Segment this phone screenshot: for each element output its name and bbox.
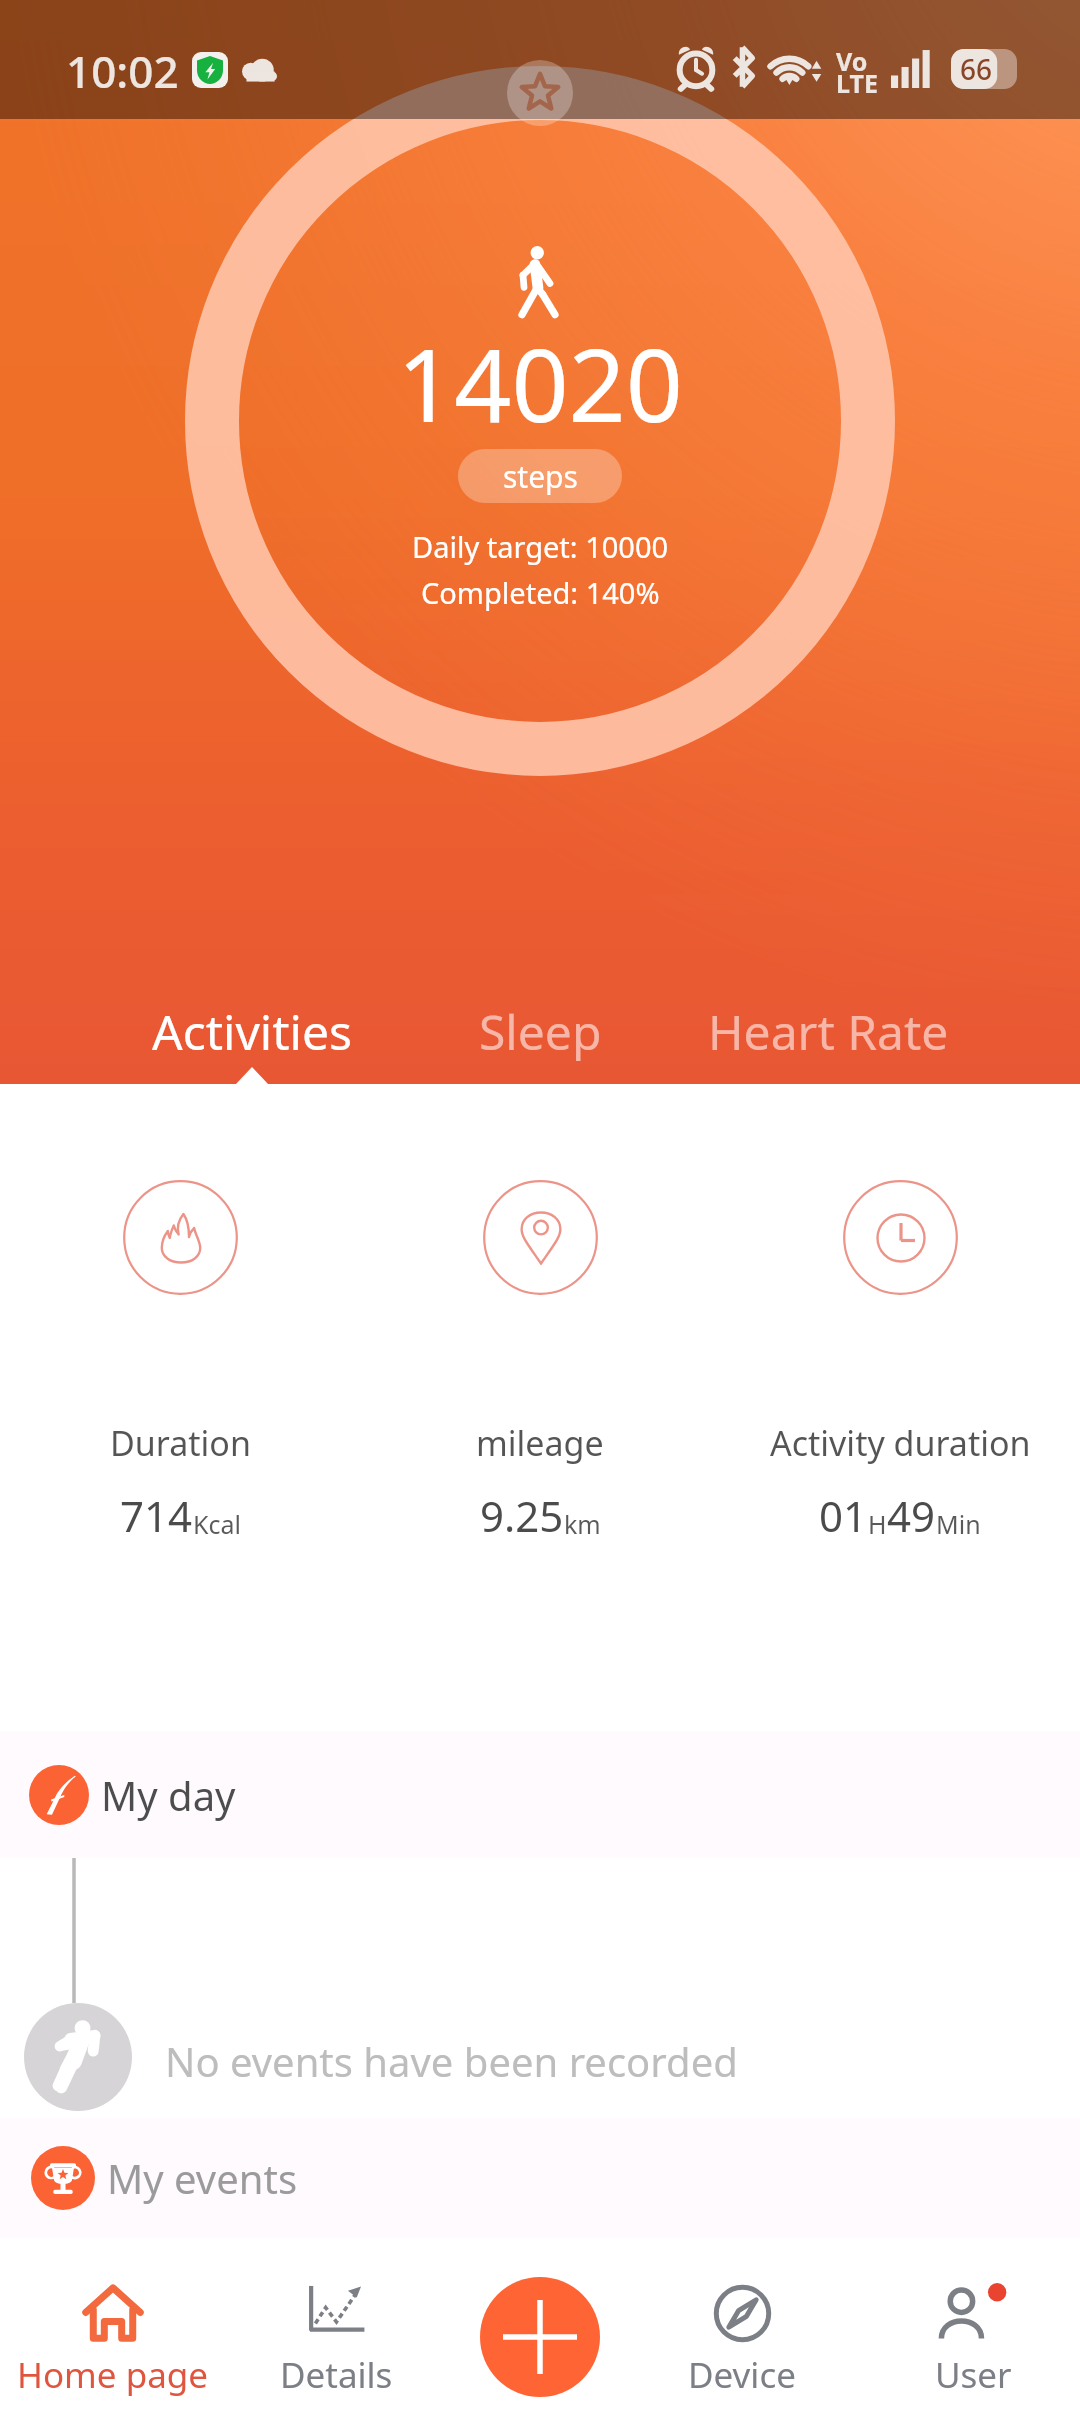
staticText: Daily target: 10000 [412, 527, 669, 566]
staticText: Device [688, 2351, 796, 2399]
staticText: 14020 [397, 315, 683, 451]
button[interactable]: Sleep [396, 964, 684, 1084]
staticText: LTE [836, 66, 878, 100]
staticText: 66 [960, 50, 993, 88]
staticText: No events have been recorded [165, 2034, 738, 2088]
staticText: User [935, 2351, 1012, 2399]
staticText: My events [107, 2151, 298, 2205]
staticText: Details [280, 2351, 393, 2399]
staticText: 9.25 [480, 1487, 564, 1544]
staticText: Min [936, 1507, 981, 1541]
staticText: Home page [17, 2351, 209, 2399]
staticText: 01 [819, 1487, 868, 1544]
button[interactable]: Heart Rate [684, 964, 972, 1084]
button[interactable]: Activities [108, 964, 396, 1084]
staticText: 10:02 [66, 41, 179, 101]
button[interactable]: Device [648, 2238, 864, 2412]
button[interactable]: My day [0, 1731, 1080, 1858]
staticText: Vo [836, 44, 868, 78]
staticText: Completed: 140% [421, 573, 660, 612]
button[interactable]: Home page [0, 2238, 216, 2412]
button[interactable]: Add [480, 2277, 600, 2397]
staticText: Activities [152, 999, 352, 1064]
staticText: H [868, 1507, 887, 1541]
staticText: 49 [887, 1487, 936, 1544]
staticText: Heart Rate [708, 999, 949, 1064]
staticText: km [564, 1507, 601, 1541]
button[interactable]: User [864, 2238, 1080, 2412]
staticText: 714 [120, 1487, 193, 1544]
staticText: My day [101, 1768, 236, 1822]
staticText: steps [503, 456, 578, 497]
staticText: Duration [110, 1420, 251, 1466]
staticText: Sleep [479, 999, 602, 1064]
staticText: Kcal [193, 1507, 241, 1541]
button[interactable]: Details [216, 2238, 432, 2412]
staticText: Activity duration [770, 1420, 1031, 1466]
staticText: mileage [476, 1420, 604, 1466]
button[interactable]: My events [0, 2118, 1080, 2238]
